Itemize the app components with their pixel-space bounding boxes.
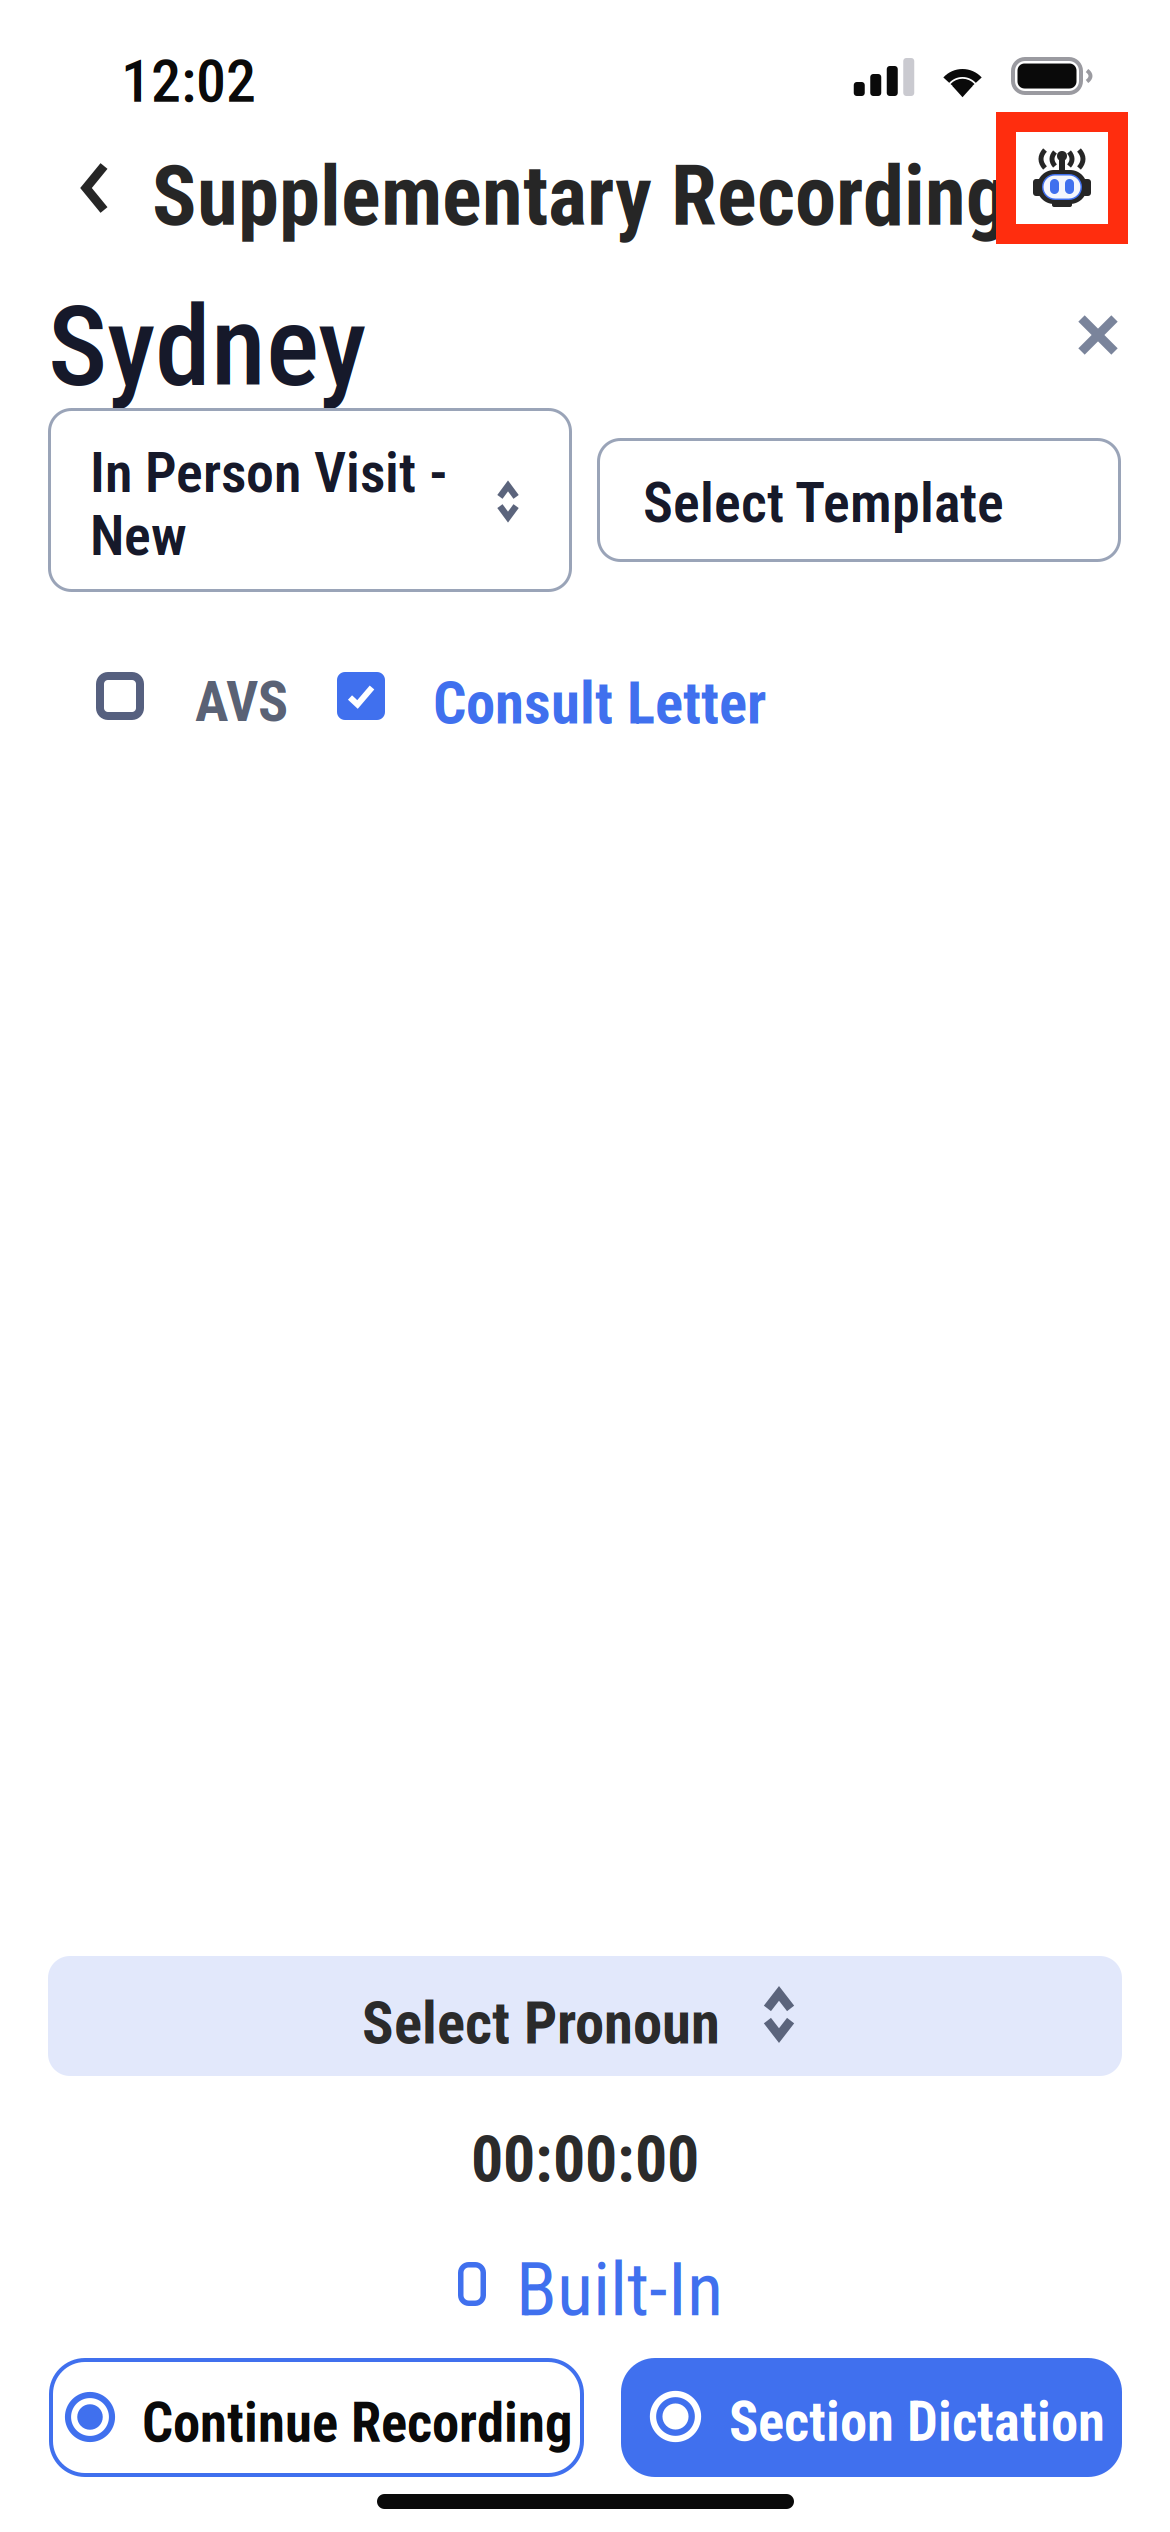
staticText: Built-In <box>516 2246 723 2333</box>
button[interactable]: Select Pronoun <box>48 1956 1122 2076</box>
button[interactable]: Assistant <box>996 112 1128 244</box>
staticText: Select Pronoun <box>362 1989 720 2058</box>
staticText: Select Template <box>643 470 1004 536</box>
staticText: 00:00:00 <box>471 2122 699 2197</box>
button[interactable]: Section Dictation <box>621 2358 1122 2477</box>
button[interactable]: AVS <box>96 660 292 732</box>
button[interactable]: Back <box>52 138 138 238</box>
staticText: Consult Letter <box>433 669 766 738</box>
button[interactable]: Consult Letter <box>337 660 777 732</box>
button[interactable]: Select Template <box>597 438 1121 562</box>
staticText: AVS <box>195 669 288 735</box>
button[interactable]: Close <box>1055 292 1141 378</box>
button[interactable]: In Person Visit - <box>48 408 572 592</box>
staticText: 12:02 <box>121 46 256 116</box>
staticText: Sydney <box>48 281 366 412</box>
button[interactable]: Built-In <box>435 2248 735 2318</box>
staticText: Continue Recording <box>142 2391 573 2455</box>
staticText: Supplementary Recording <box>152 148 1008 245</box>
staticText: New <box>90 503 187 569</box>
button[interactable]: Continue Recording <box>49 2358 584 2477</box>
staticText: In Person Visit - <box>90 440 448 506</box>
staticText: Section Dictation <box>729 2390 1105 2454</box>
